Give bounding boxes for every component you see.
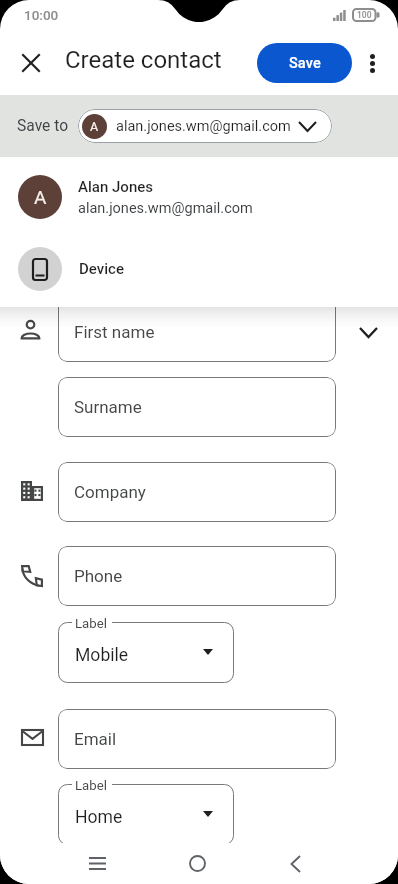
staticText: 100 xyxy=(357,10,372,20)
staticText: Phone xyxy=(74,566,123,586)
button[interactable]: Device xyxy=(0,237,398,301)
staticText: Surname xyxy=(74,397,142,417)
button[interactable]: A xyxy=(78,109,332,143)
staticText: Save to xyxy=(17,117,69,135)
button[interactable]: Label xyxy=(58,784,234,845)
staticText: Device xyxy=(79,260,124,278)
staticText: First name xyxy=(74,322,155,342)
staticText: Save xyxy=(289,55,321,72)
staticText: 10:00 xyxy=(24,7,59,23)
button[interactable]: More options xyxy=(350,41,394,85)
button[interactable]: Back xyxy=(271,843,319,884)
staticText: A xyxy=(34,186,47,208)
staticText: Create contact xyxy=(65,46,222,74)
button[interactable]: First name xyxy=(58,294,336,362)
button[interactable]: Company xyxy=(58,462,336,522)
staticText: alan.jones.wm@gmail.com xyxy=(116,118,291,135)
staticText: Label xyxy=(75,616,107,631)
staticText: Email xyxy=(74,729,117,749)
staticText: A xyxy=(90,119,99,134)
button[interactable]: Save xyxy=(257,43,352,83)
staticText: Label xyxy=(75,778,107,793)
button[interactable]: Recent apps xyxy=(73,843,121,884)
button[interactable]: Expand name fields xyxy=(346,302,390,362)
staticText: alan.jones.wm@gmail.com xyxy=(78,200,253,217)
button[interactable]: Home xyxy=(173,843,221,884)
button[interactable]: Label xyxy=(58,622,234,683)
staticText: Company xyxy=(74,482,146,502)
button[interactable]: A xyxy=(0,157,398,237)
staticText: Home xyxy=(75,807,123,828)
button[interactable]: Surname xyxy=(58,377,336,437)
button[interactable]: Phone xyxy=(58,546,336,606)
button[interactable]: Email xyxy=(58,709,336,769)
button[interactable]: Close xyxy=(7,39,55,87)
staticText: Alan Jones xyxy=(78,178,154,196)
staticText: Mobile xyxy=(75,645,129,666)
